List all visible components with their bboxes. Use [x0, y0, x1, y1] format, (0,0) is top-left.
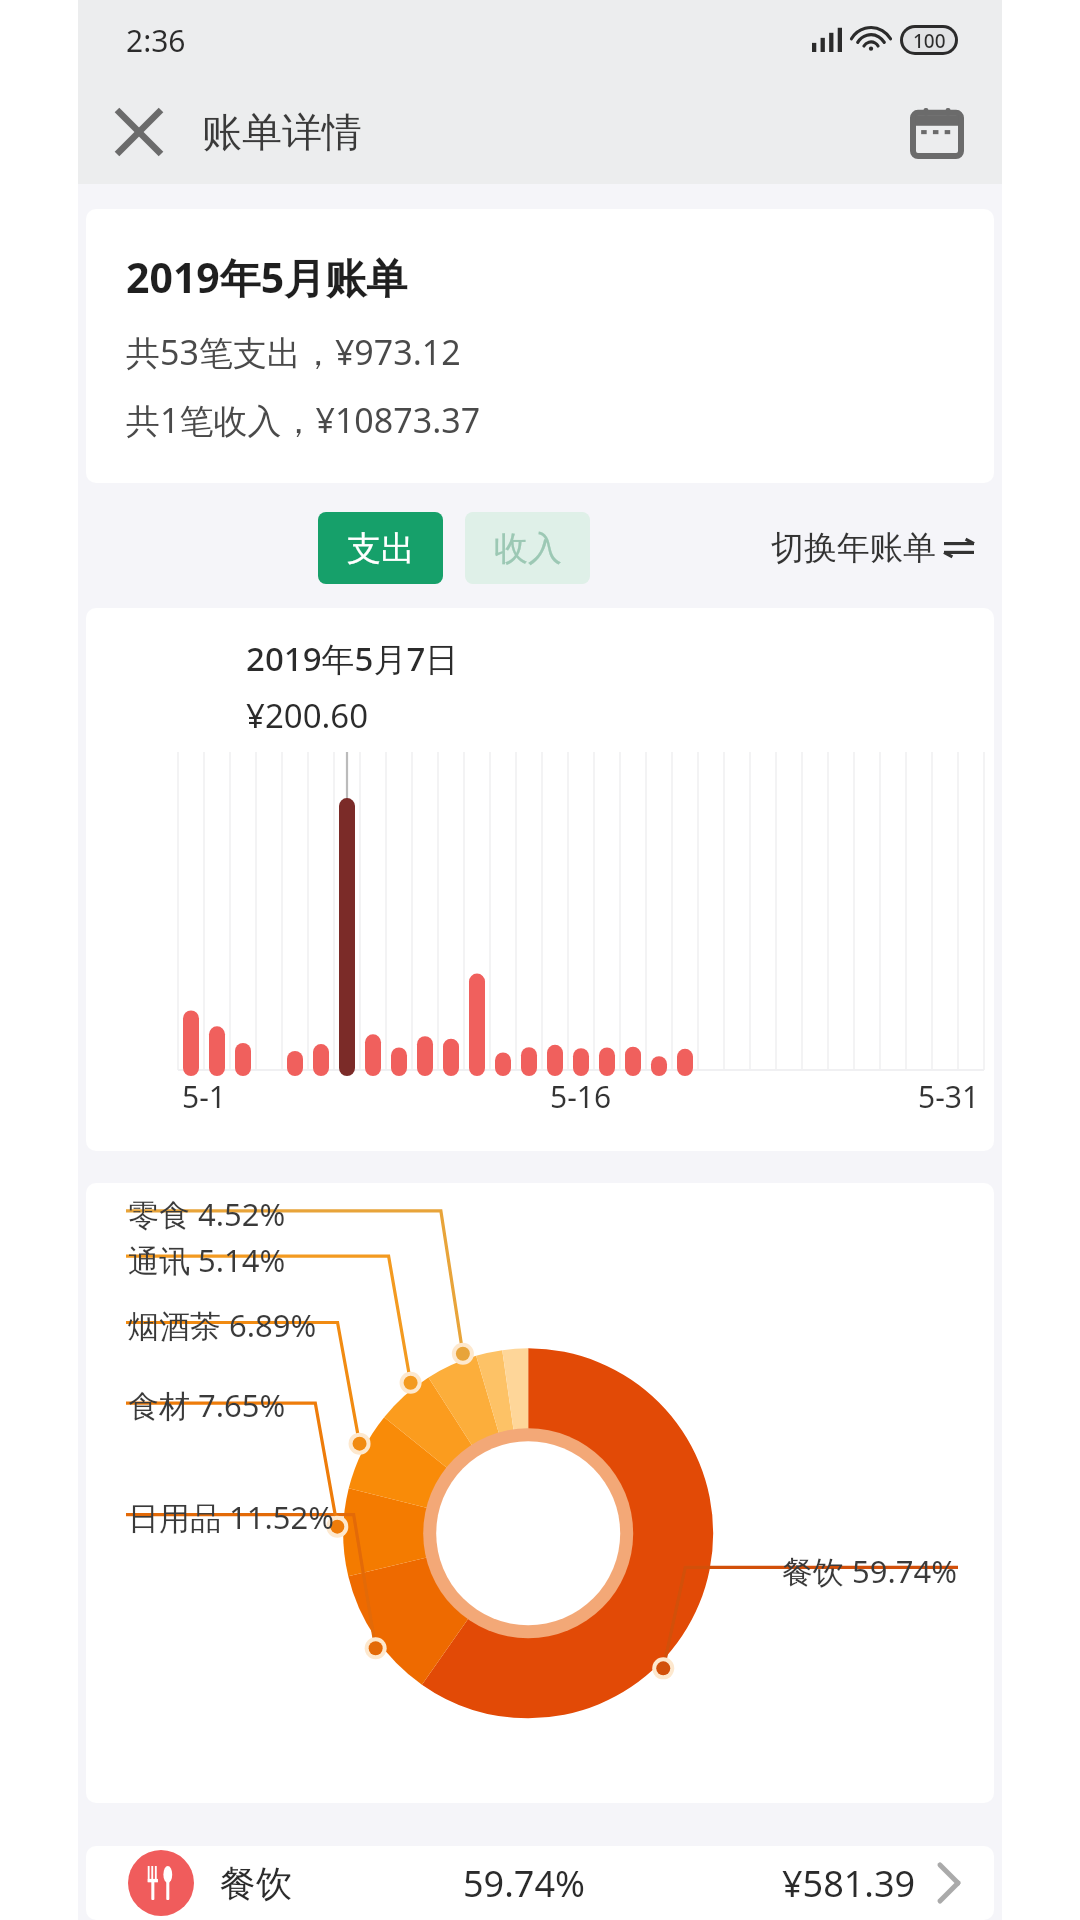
button[interactable]: Calendar [894, 89, 980, 175]
staticText: 餐饮 [220, 1861, 292, 1906]
button[interactable]: 收入 [465, 512, 590, 584]
staticText: 59.74% [463, 1859, 585, 1908]
button[interactable]: 餐饮 [86, 1846, 994, 1920]
button[interactable]: Close [94, 87, 184, 177]
button[interactable]: 支出 [318, 512, 443, 584]
staticText: 烟酒茶 6.89% [128, 1304, 317, 1346]
staticText: 食材 7.65% [128, 1384, 286, 1426]
staticText: 共1笔收入，¥10873.37 [126, 397, 481, 443]
staticText: 5-31 [918, 1076, 980, 1117]
staticText: 支出 [347, 527, 415, 570]
staticText: 日用品 11.52% [128, 1496, 335, 1538]
staticText: ¥581.39 [782, 1859, 916, 1908]
staticText: 通讯 5.14% [128, 1239, 286, 1281]
staticText: ¥200.60 [246, 693, 369, 738]
staticText: 100 [913, 28, 946, 52]
button[interactable]: 2019年5月7日 [86, 608, 994, 1151]
button[interactable]: 2019年5月账单 [86, 209, 994, 483]
staticText: 收入 [494, 527, 562, 570]
button[interactable]: 零食 4.52% [86, 1183, 994, 1803]
button[interactable]: 切换年账单 [771, 517, 974, 579]
staticText: 5-16 [550, 1076, 612, 1117]
staticText: 共53笔支出，¥973.12 [126, 329, 461, 375]
staticText: 2019年5月7日 [246, 636, 459, 681]
staticText: 账单详情 [202, 107, 362, 157]
staticText: 零食 4.52% [128, 1193, 286, 1235]
staticText: 餐饮 59.74% [782, 1550, 958, 1592]
staticText: 切换年账单 [771, 527, 936, 569]
staticText: 5-1 [182, 1076, 226, 1117]
staticText: 2:36 [126, 20, 186, 61]
staticText: 2019年5月账单 [126, 249, 408, 305]
